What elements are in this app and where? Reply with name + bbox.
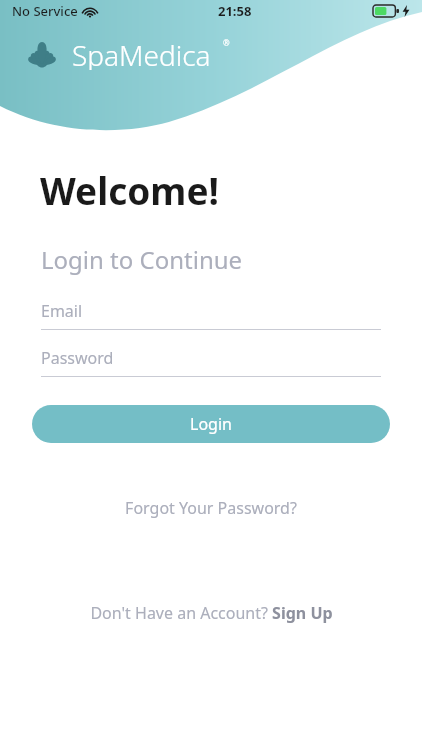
staticText: ® bbox=[223, 37, 230, 48]
staticText: Login bbox=[190, 413, 232, 435]
staticText: Welcome! bbox=[40, 165, 219, 215]
staticText: SpaMedica bbox=[72, 36, 211, 70]
staticText: Don't Have an Account? Sign Up bbox=[90, 602, 333, 624]
staticText: 21:58 bbox=[218, 2, 252, 20]
button[interactable]: Password bbox=[41, 347, 381, 377]
button[interactable]: Forgot Your Password? bbox=[0, 495, 422, 521]
staticText: No Service bbox=[12, 2, 78, 20]
staticText: Password bbox=[41, 347, 114, 369]
staticText: Forgot Your Password? bbox=[125, 497, 297, 519]
button[interactable]: Login bbox=[32, 405, 390, 443]
staticText: Email bbox=[41, 300, 83, 322]
staticText: Login to Continue bbox=[41, 243, 243, 276]
button[interactable]: Email bbox=[41, 300, 381, 330]
button[interactable]: Don't Have an Account? Sign Up bbox=[0, 600, 422, 626]
